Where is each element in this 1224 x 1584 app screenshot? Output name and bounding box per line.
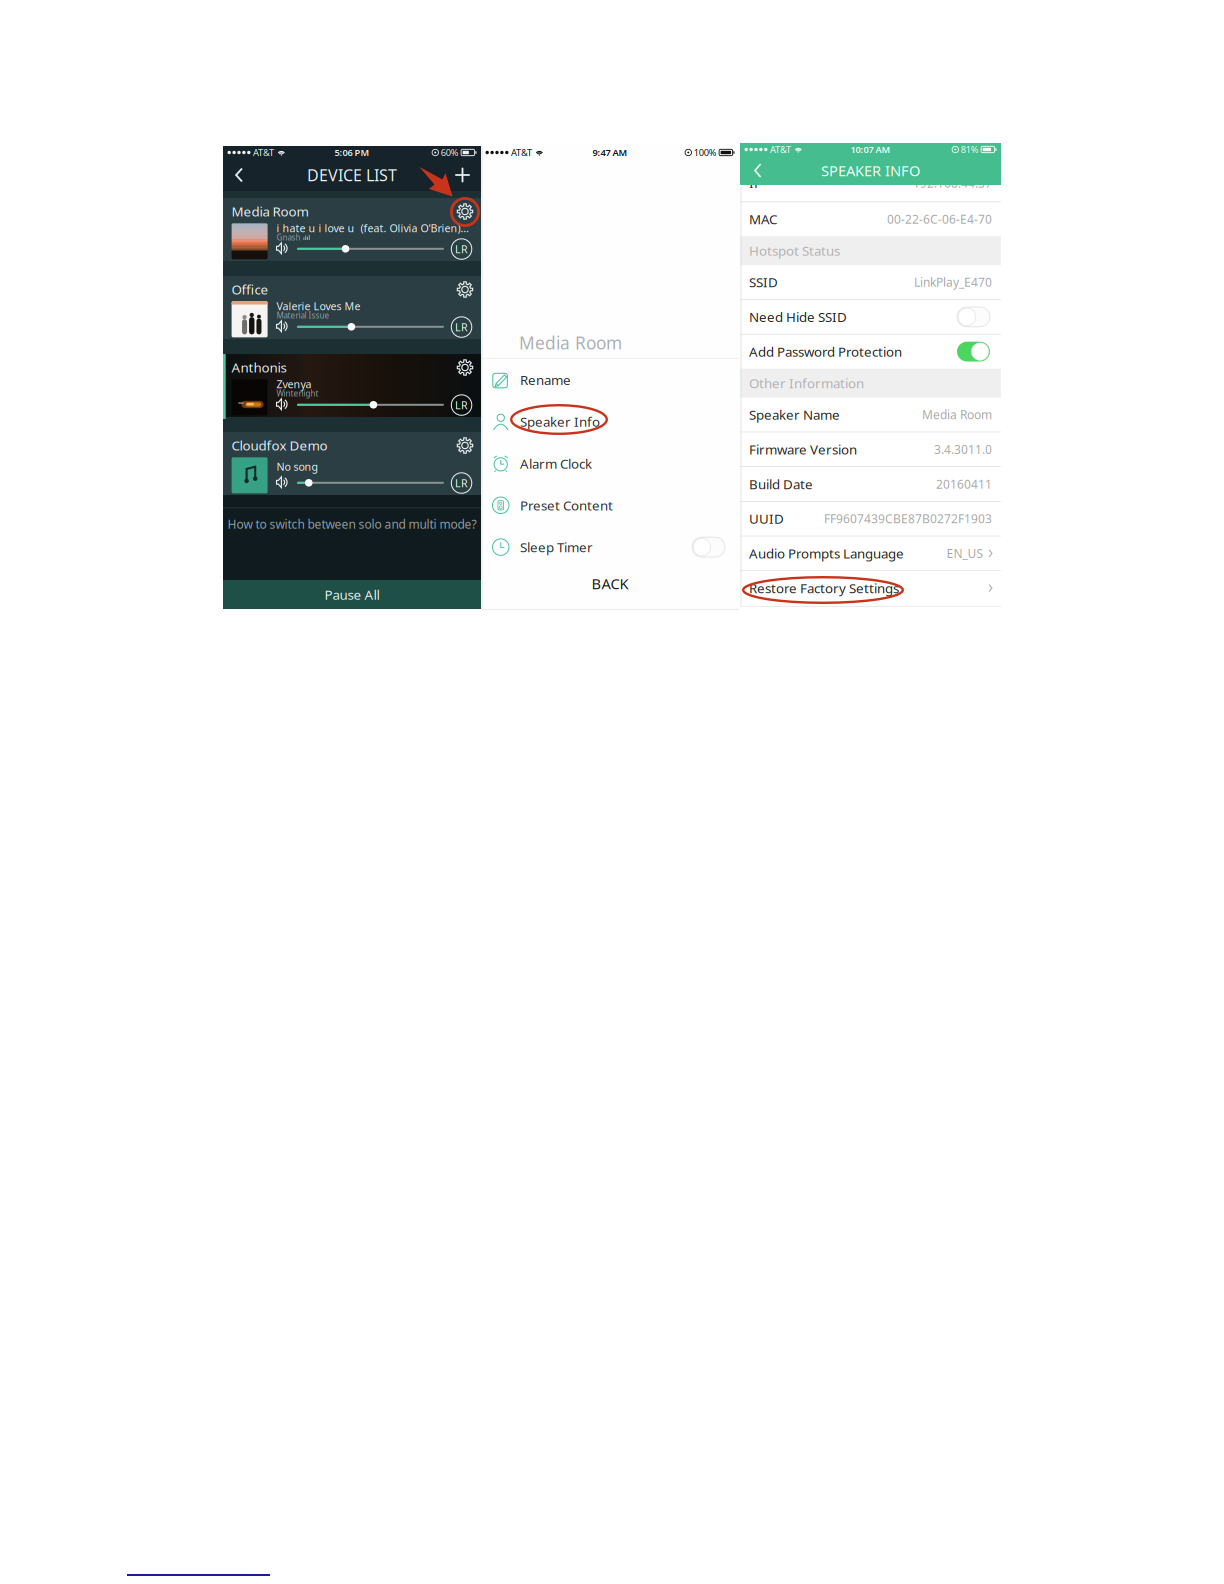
staticText: Need Hide SSID [749, 308, 847, 326]
staticText: IP [749, 174, 762, 192]
staticText: Sleep Timer [520, 538, 593, 556]
staticText: 81% [961, 143, 979, 156]
staticText: Media Room [519, 331, 622, 354]
button[interactable]: Back [229, 163, 248, 186]
staticText: SPEAKER INFO [821, 161, 920, 180]
staticText: Winterlight [276, 388, 318, 399]
button[interactable]: Pause All [223, 580, 481, 609]
staticText: Office [231, 280, 268, 298]
staticText: FF9607439CBE87B0272F1903 [824, 511, 992, 527]
staticText: 00-22-6C-06-E4-70 [887, 211, 992, 227]
staticText: 10:07 AM [850, 143, 890, 156]
staticText: MAC [749, 210, 777, 228]
staticText: Audio Prompts Language [749, 544, 904, 562]
button[interactable]: UUID [740, 502, 1001, 536]
staticText: How to switch between solo and multi mod… [227, 516, 476, 532]
staticText: Speaker Info [520, 413, 600, 430]
button[interactable]: MAC [740, 202, 1001, 236]
staticText: Other Information [749, 374, 864, 392]
button[interactable]: Add Password Protection [740, 335, 1001, 369]
staticText: LR [455, 398, 468, 412]
button[interactable]: Speaker Name [740, 398, 1001, 432]
staticText: Media Room [231, 202, 308, 220]
button[interactable]: Media Room [223, 198, 481, 261]
staticText: Rename [520, 371, 571, 389]
staticText: 100% [694, 146, 717, 159]
button[interactable]: SSID [740, 265, 1001, 299]
staticText: Valerie Loves Me [276, 299, 360, 313]
staticText: 20160411 [936, 476, 992, 492]
staticText: Preset Content [520, 496, 613, 514]
button[interactable]: Build Date [740, 467, 1001, 501]
button[interactable]: Sleep Timer [481, 526, 739, 568]
button[interactable]: Add device [450, 163, 475, 186]
button[interactable]: Settings for Media Room [454, 201, 475, 222]
button[interactable]: Anthonis [223, 354, 481, 417]
staticText: SSID [749, 273, 778, 291]
button[interactable]: Firmware Version [740, 432, 1001, 466]
staticText: i hate u i love u (feat. Olivia O'Brien)… [276, 221, 468, 235]
staticText: UUID [749, 510, 784, 527]
staticText: AT&T [770, 143, 791, 156]
staticText: 3.4.3011.0 [934, 441, 992, 457]
staticText: LR [455, 476, 468, 490]
button[interactable]: Office [223, 276, 481, 339]
button[interactable]: How to switch between solo and multi mod… [223, 508, 481, 540]
staticText: Firmware Version [749, 440, 857, 458]
staticText: AT&T [511, 146, 532, 159]
staticText: Build Date [749, 475, 813, 493]
staticText: Alarm Clock [520, 455, 592, 472]
button[interactable]: Need Hide SSID [740, 300, 1001, 334]
button[interactable]: Settings for Anthonis [454, 357, 475, 378]
staticText: 9:47 AM [592, 146, 627, 159]
staticText: DEVICE LIST [307, 164, 397, 186]
staticText: LinkPlay_E470 [914, 274, 992, 290]
staticText: Speaker Name [749, 406, 840, 423]
staticText: Media Room [922, 407, 992, 422]
staticText: 5:06 PM [334, 146, 369, 159]
button[interactable]: Preset Content [481, 484, 739, 526]
staticText: 60% [441, 146, 459, 159]
button[interactable]: Alarm Clock [481, 443, 739, 484]
staticText: 192.168.44.37 [913, 175, 992, 191]
staticText: Restore Factory Settings [749, 579, 899, 597]
staticText: Zvenya [276, 377, 311, 391]
staticText: Pause All [324, 586, 379, 603]
staticText: Gnash [276, 232, 300, 243]
staticText: LR [455, 320, 468, 334]
staticText: LR [455, 242, 468, 256]
staticText: Cloudfox Demo [231, 436, 327, 454]
button[interactable]: Rename [481, 359, 739, 401]
staticText: No song [276, 459, 318, 474]
button[interactable]: Settings for Cloudfox Demo [454, 435, 475, 456]
button[interactable]: Settings for Office [454, 279, 475, 300]
button[interactable]: BACK [481, 568, 739, 599]
staticText: EN_US [946, 545, 983, 561]
staticText: Hotspot Status [749, 242, 840, 259]
staticText: BACK [591, 574, 628, 593]
staticText: Anthonis [231, 358, 286, 376]
button[interactable]: Speaker Info [481, 401, 739, 443]
button[interactable]: Restore Factory Settings [740, 571, 1001, 605]
staticText: Add Password Protection [749, 343, 902, 360]
button[interactable]: Audio Prompts Language [740, 536, 1001, 570]
staticText: Material Issue [276, 310, 329, 321]
button[interactable]: Cloudfox Demo [223, 432, 481, 495]
button[interactable]: Back [748, 159, 767, 182]
staticText: AT&T [253, 146, 274, 159]
